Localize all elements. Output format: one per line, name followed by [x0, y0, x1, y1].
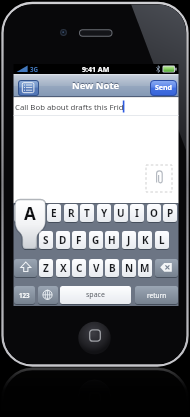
button[interactable]: U [114, 204, 128, 222]
staticText: F [76, 233, 82, 247]
staticText: Send [155, 83, 173, 93]
button[interactable]: Send [150, 80, 177, 96]
staticText: A [27, 233, 34, 247]
button[interactable]: C [72, 259, 86, 277]
staticText: M [140, 261, 150, 275]
staticText: return [147, 291, 167, 300]
button[interactable]: E [47, 204, 61, 222]
staticText: 123 [19, 291, 30, 299]
button[interactable]: W [31, 204, 45, 222]
staticText: N [125, 261, 134, 275]
button[interactable]: D [56, 231, 70, 249]
button[interactable]: M [138, 259, 152, 277]
button[interactable]: P [163, 204, 177, 222]
staticText: New Note [72, 79, 120, 92]
staticText: A [24, 202, 36, 225]
button[interactable] [79, 322, 111, 354]
button[interactable]: K [138, 231, 152, 249]
button[interactable]: J [122, 231, 136, 249]
button[interactable]: Q [14, 204, 28, 222]
button[interactable]: B [105, 259, 119, 277]
button[interactable] [14, 97, 179, 203]
button[interactable]: L [155, 231, 169, 249]
button[interactable]: 123 [14, 286, 35, 304]
button[interactable]: G [89, 231, 103, 249]
button[interactable]: A [23, 231, 37, 249]
staticText: L [159, 233, 165, 247]
staticText: P [167, 206, 174, 220]
staticText: C [76, 261, 83, 275]
staticText: W [33, 206, 43, 220]
button[interactable] [18, 80, 39, 96]
button[interactable]: O [147, 204, 161, 222]
staticText: S [43, 233, 49, 247]
button[interactable]: Y [97, 204, 111, 222]
staticText: J [127, 233, 131, 247]
staticText: E [51, 206, 57, 220]
button[interactable]: Z [39, 259, 53, 277]
button[interactable]: N [122, 259, 136, 277]
button[interactable]: I [130, 204, 144, 222]
button[interactable]: V [89, 259, 103, 277]
button[interactable]: X [56, 259, 70, 277]
staticText: 9:41 AM [82, 65, 110, 75]
staticText: I [135, 206, 139, 220]
staticText: 3G [30, 65, 39, 74]
staticText: Call Bob about drafts this Frid [15, 102, 124, 113]
staticText: Y [101, 206, 108, 220]
button[interactable]: F [72, 231, 86, 249]
staticText: B [109, 261, 116, 275]
staticText: V [93, 261, 100, 275]
staticText: G [92, 233, 100, 247]
staticText: Z [43, 261, 49, 275]
button[interactable]: R [64, 204, 78, 222]
staticText: O [150, 206, 158, 220]
staticText: D [59, 233, 67, 247]
staticText: H [108, 233, 116, 247]
button[interactable]: A [15, 200, 45, 226]
button[interactable] [38, 286, 58, 304]
button[interactable]: S [39, 231, 53, 249]
staticText: U [117, 206, 125, 220]
staticText: T [84, 206, 90, 220]
button[interactable]: H [105, 231, 119, 249]
button[interactable] [14, 259, 37, 277]
staticText: K [142, 233, 149, 247]
button[interactable] [155, 259, 178, 277]
staticText: X [60, 261, 67, 275]
button[interactable]: T [80, 204, 94, 222]
staticText: R [68, 206, 75, 220]
staticText: space [86, 290, 105, 300]
button[interactable]: return [135, 286, 178, 304]
button[interactable] [146, 165, 172, 192]
button[interactable]: space [60, 286, 131, 304]
staticText: Q [17, 206, 25, 220]
